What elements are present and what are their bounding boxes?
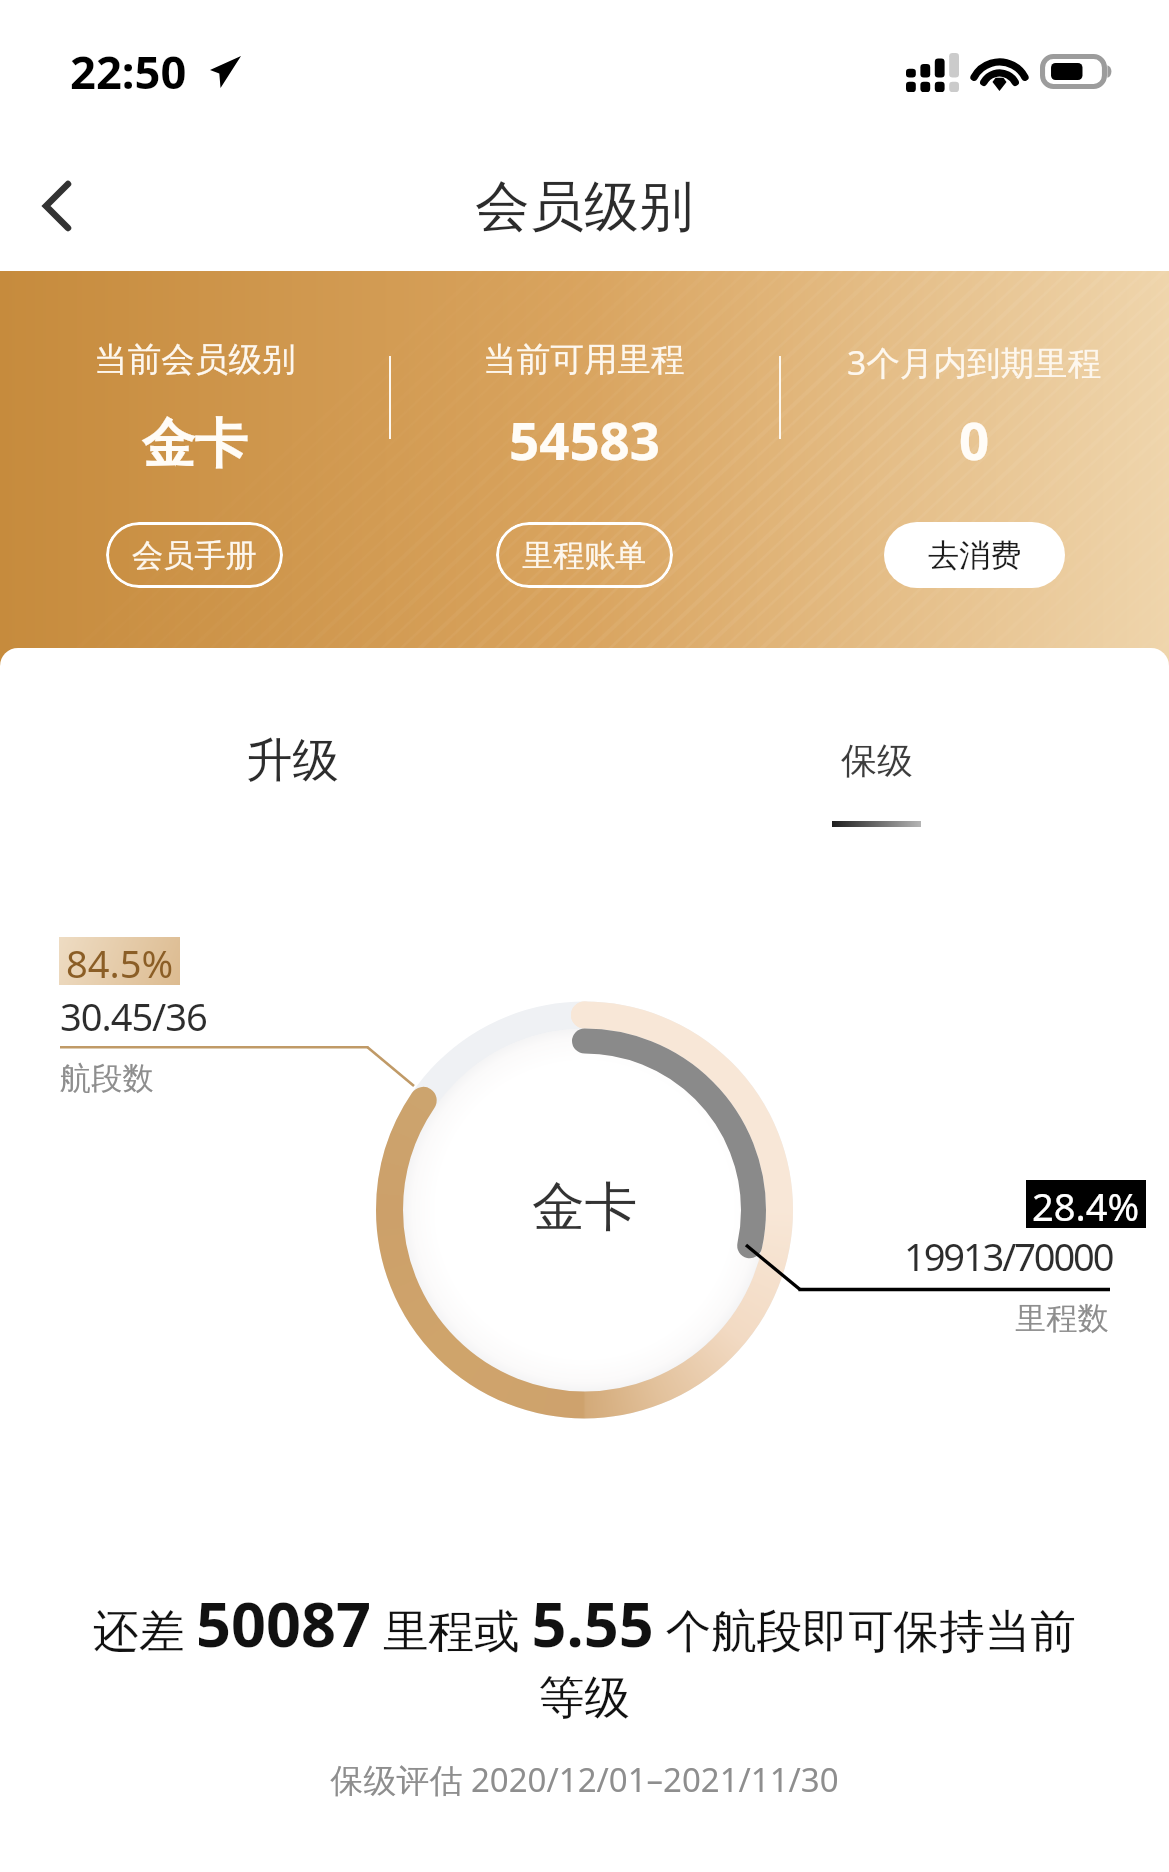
button[interactable]: Back	[2, 151, 112, 261]
button[interactable]: 里程账单	[496, 522, 673, 588]
button[interactable]: 会员手册	[106, 522, 283, 588]
staticText: 会员手册	[132, 536, 257, 575]
staticText: 3个月内到期里程	[847, 339, 1102, 385]
staticText: 里程数	[1015, 1299, 1109, 1338]
staticText: 还差 50087 里程或 5.55 个航段即可保持当前等级	[92, 1582, 1077, 1727]
staticText: 54583	[509, 404, 660, 476]
staticText: 0	[959, 404, 990, 476]
staticText: 30.45/36	[60, 990, 207, 1042]
staticText: 28.4%	[1032, 1180, 1140, 1228]
staticText: 保级评估 2020/12/01–2021/11/30	[0, 1757, 1169, 1802]
button[interactable]: 升级	[175, 700, 409, 840]
staticText: 航段数	[60, 1059, 154, 1098]
staticText: 22:50	[70, 41, 187, 103]
staticText: 19913/70000	[904, 1230, 1113, 1282]
staticText: 金卡	[142, 411, 248, 478]
staticText: 保级	[841, 738, 913, 783]
staticText: 里程账单	[522, 536, 647, 575]
staticText: 84.5%	[66, 937, 174, 985]
staticText: 会员级别	[475, 172, 694, 241]
staticText: 升级	[246, 731, 339, 790]
staticText: 当前可用里程	[483, 339, 685, 381]
staticText: 去消费	[928, 536, 1022, 575]
button[interactable]: 保级	[760, 700, 994, 840]
button[interactable]: 去消费	[884, 522, 1065, 588]
staticText: 当前会员级别	[94, 339, 296, 381]
staticText: 金卡	[532, 1174, 638, 1241]
